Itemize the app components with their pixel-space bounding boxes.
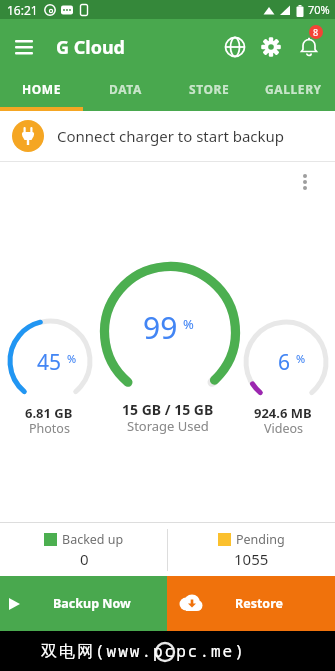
button[interactable]: Connect charger to start backup bbox=[0, 111, 335, 161]
staticText: Connect charger to start backup bbox=[57, 126, 285, 146]
staticText: 15 GB / 15 GB bbox=[122, 400, 214, 419]
staticText: 双电网(www.pcpc.me) bbox=[41, 640, 246, 662]
button[interactable]: GALLERY bbox=[251, 75, 335, 111]
button[interactable] bbox=[253, 29, 289, 65]
button[interactable] bbox=[293, 170, 317, 194]
staticText: Pending bbox=[236, 531, 285, 548]
staticText: Photos bbox=[29, 420, 70, 437]
staticText: Storage Used bbox=[127, 417, 209, 435]
button[interactable]: DATA bbox=[83, 75, 167, 111]
button[interactable] bbox=[0, 23, 48, 71]
staticText: GALLERY bbox=[265, 81, 322, 97]
staticText: % bbox=[296, 351, 306, 366]
staticText: G Cloud bbox=[56, 35, 125, 60]
staticText: % bbox=[67, 351, 77, 366]
button[interactable]: 8 bbox=[289, 27, 329, 67]
staticText: % bbox=[183, 315, 194, 333]
staticText: 70% bbox=[308, 2, 330, 17]
staticText: Restore bbox=[235, 595, 283, 612]
button[interactable] bbox=[217, 29, 253, 65]
staticText: 0 bbox=[80, 549, 89, 569]
staticText: Backed up bbox=[62, 531, 124, 548]
staticText: DATA bbox=[109, 81, 142, 97]
button[interactable]: Backed up bbox=[0, 523, 167, 576]
staticText: 924.6 MB bbox=[254, 404, 312, 422]
button[interactable]: STORE bbox=[167, 75, 251, 111]
staticText: STORE bbox=[189, 81, 230, 97]
button[interactable]: HOME bbox=[0, 75, 83, 111]
button[interactable]: Pending bbox=[168, 523, 335, 576]
staticText: 99 bbox=[143, 307, 178, 348]
button[interactable]: Backup Now bbox=[0, 576, 167, 631]
staticText: 6.81 GB bbox=[25, 404, 73, 422]
button[interactable]: Restore bbox=[167, 576, 335, 631]
staticText: 16:21 bbox=[7, 2, 38, 18]
staticText: Backup Now bbox=[53, 595, 131, 612]
staticText: HOME bbox=[22, 81, 62, 97]
staticText: Videos bbox=[264, 420, 304, 437]
staticText: 8 bbox=[313, 26, 319, 38]
staticText: 1055 bbox=[234, 549, 269, 569]
staticText: 6 bbox=[278, 348, 291, 377]
staticText: 45 bbox=[37, 348, 62, 377]
